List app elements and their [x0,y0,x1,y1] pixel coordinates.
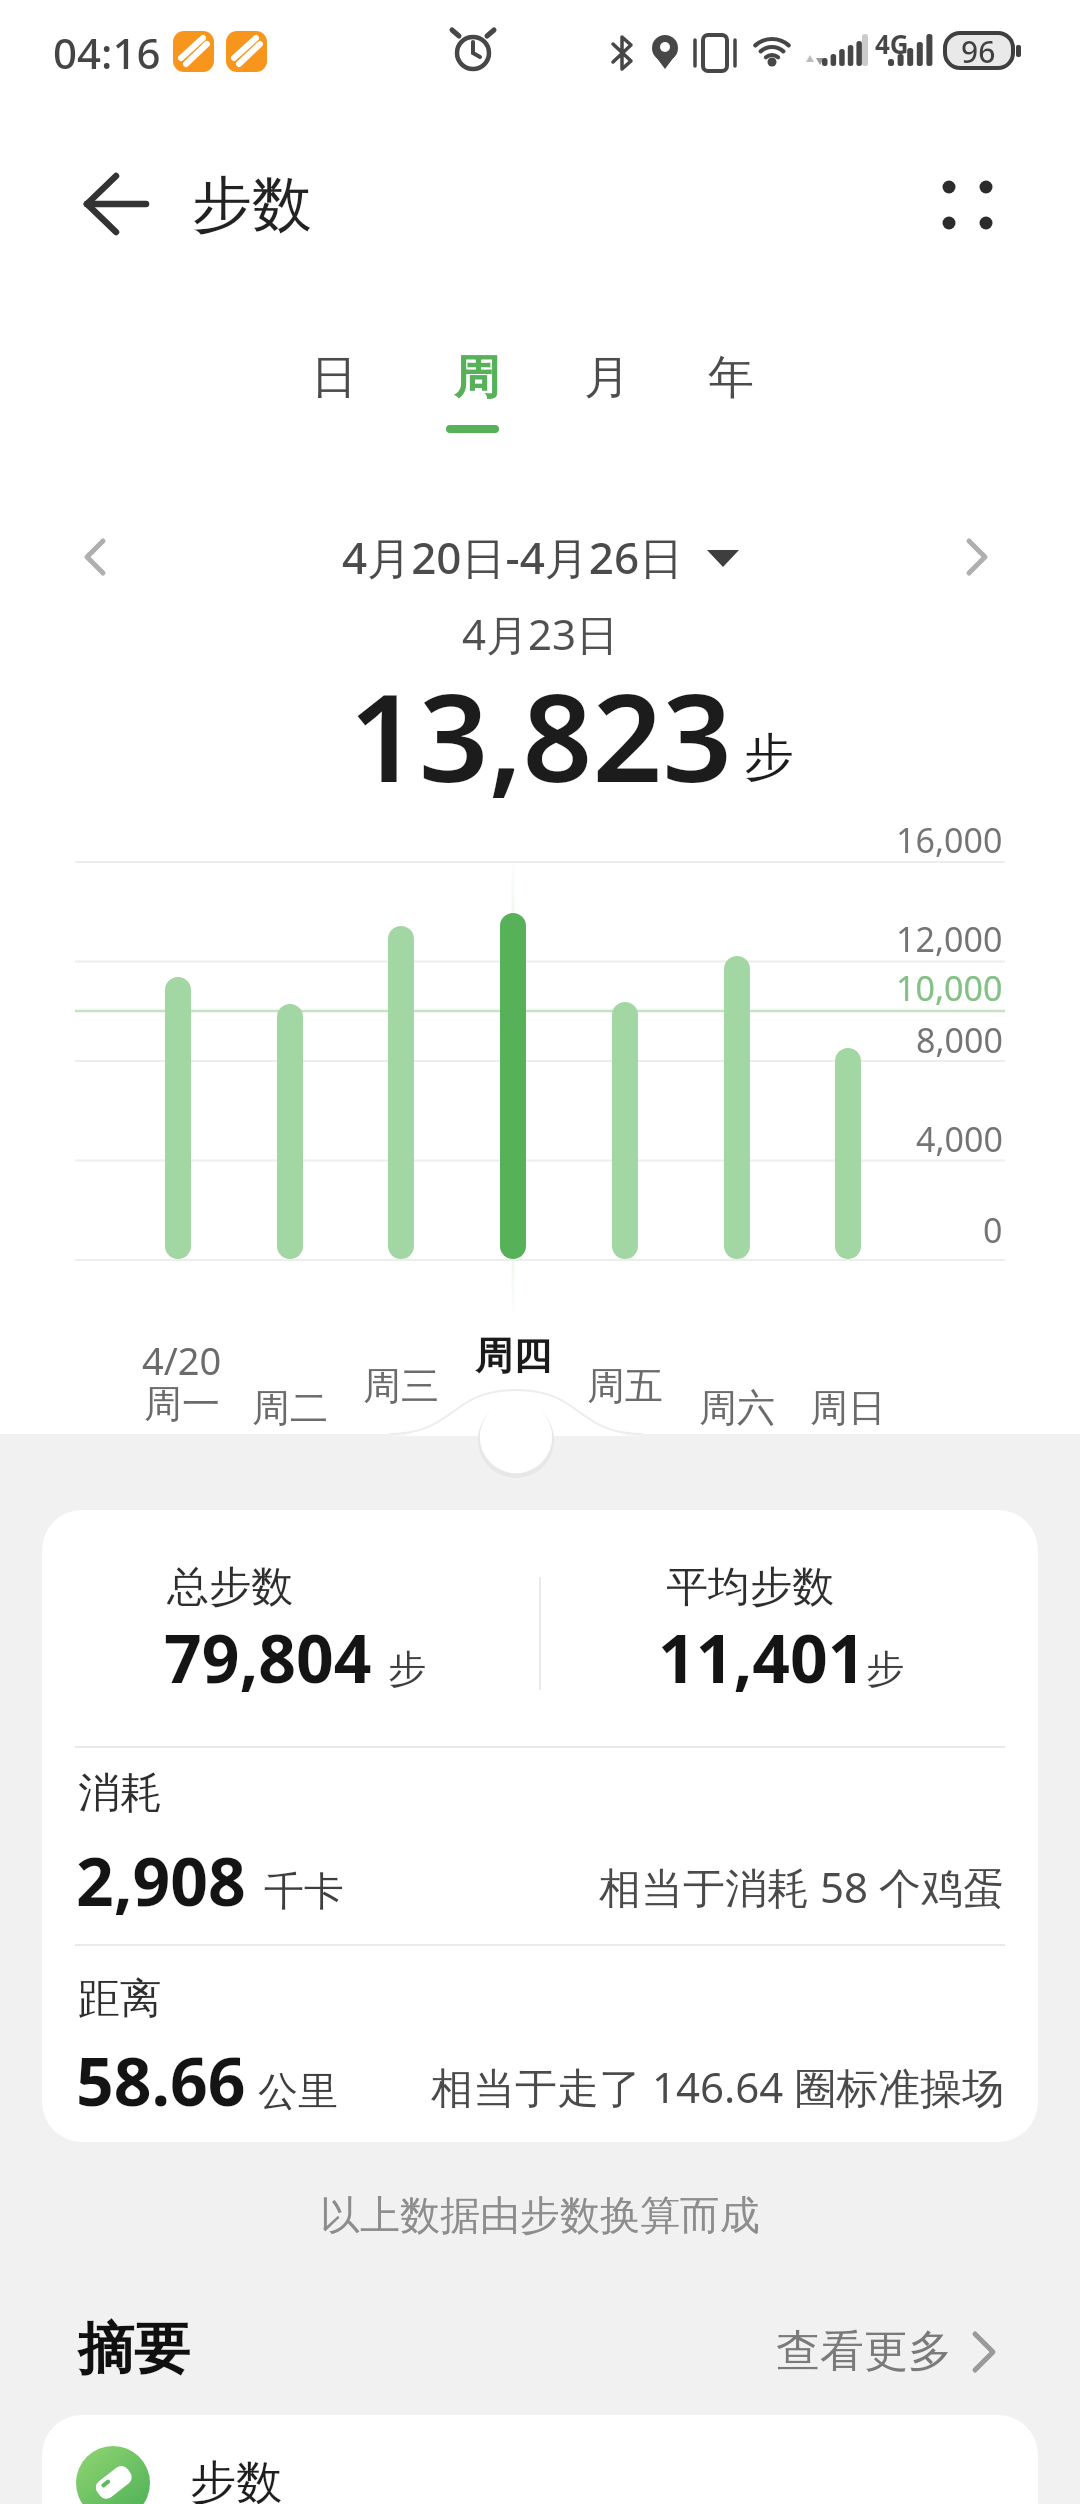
button[interactable]: 步数 [42,2415,1038,2504]
button[interactable] [925,165,1010,245]
staticText: 步 [866,1645,904,1693]
staticText: 10,000 [896,965,1003,1011]
staticText: 13,823 [349,652,732,818]
staticText: 步 [744,726,794,789]
staticText: 79,804 [164,1612,372,1702]
staticText: 周六 [699,1384,775,1432]
staticText: 总步数 [167,1561,293,1614]
staticText: 4G [875,26,909,61]
staticText: 周四 [475,1332,551,1380]
button[interactable] [60,520,130,595]
staticText: 8,000 [916,1017,1003,1063]
staticText: 0 [983,1207,1003,1253]
staticText: 步 [388,1645,426,1693]
button[interactable]: 周 [432,332,522,424]
button[interactable]: 4月20日-4月26日 [333,513,693,601]
button[interactable]: 日 [289,332,379,424]
button[interactable] [945,520,1015,595]
staticText: 周三 [363,1362,439,1410]
staticText: 周一 [144,1380,220,1428]
button[interactable]: 月 [562,332,652,424]
staticText: 查看更多 [776,2324,952,2379]
staticText: 公里 [258,2066,338,2116]
staticText: 11,401 [658,1612,866,1702]
staticText: 58.66 [76,2035,246,2125]
staticText: 周五 [587,1362,663,1410]
staticText: 4,000 [916,1116,1003,1162]
staticText: 12,000 [896,916,1003,962]
staticText: 周日 [810,1384,886,1432]
staticText: 平均步数 [666,1561,834,1614]
staticText: 步数 [192,167,312,243]
staticText: 96 [961,31,996,72]
staticText: 千卡 [264,1866,344,1916]
staticText: 16,000 [896,817,1003,863]
button[interactable] [770,2320,1010,2382]
staticText: 年 [708,349,754,407]
staticText: 月 [584,349,630,407]
button[interactable]: 年 [686,332,776,424]
staticText: 相当于消耗 58 个鸡蛋 [599,1858,1005,1915]
staticText: 4月20日-4月26日 [342,527,684,587]
button[interactable] [70,170,160,240]
staticText: 2,908 [76,1835,246,1925]
staticText: 距离 [78,1973,162,2026]
staticText: 日 [311,349,357,407]
staticText: 摘要 [78,2314,190,2385]
staticText: 相当于走了 146.64 圈标准操场 [431,2058,1005,2115]
staticText: 消耗 [78,1767,162,1820]
staticText: 04:16 [53,24,161,81]
staticText: 以上数据由步数换算而成 [320,2190,760,2240]
staticText: 4/20 [142,1334,222,1386]
staticText: 步数 [190,2454,282,2504]
staticText: 周二 [252,1384,328,1432]
staticText: 周 [454,349,500,407]
staticText: 4月23日 [462,605,619,662]
